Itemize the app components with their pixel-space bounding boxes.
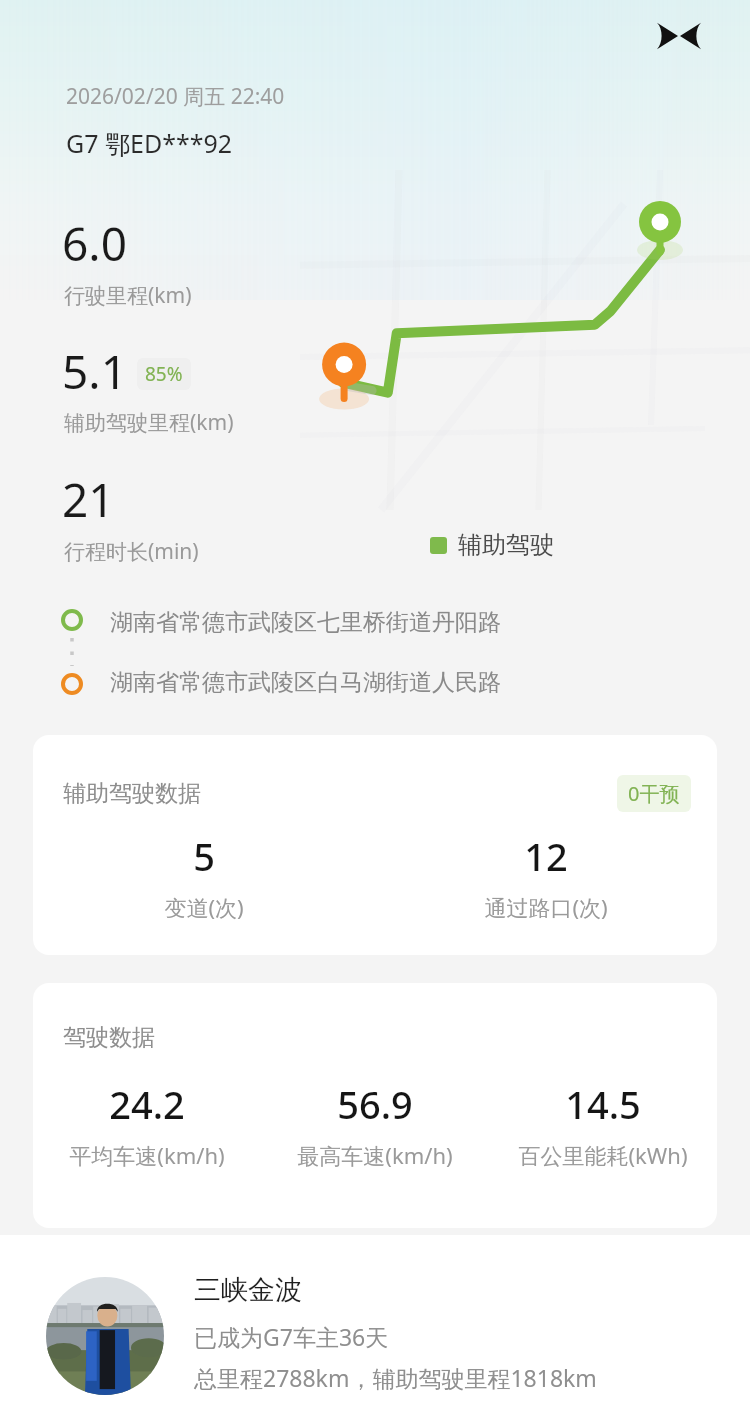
staticText: 已成为G7车主36天 xyxy=(194,1321,389,1352)
staticText: G7 鄂ED***92 xyxy=(66,126,233,160)
staticText: 2026/02/20 周五 22:40 xyxy=(66,82,285,111)
staticText: 变道(次) xyxy=(164,892,244,922)
staticText: 百公里能耗(kWh) xyxy=(518,1140,688,1170)
staticText: 24.2 xyxy=(109,1078,185,1130)
button[interactable]: Brand logo xyxy=(655,12,703,60)
staticText: 14.5 xyxy=(565,1078,641,1130)
staticText: 5 xyxy=(193,830,215,882)
staticText: 0干预 xyxy=(628,780,680,807)
staticText: 行驶里程(km) xyxy=(64,281,192,310)
staticText: 驾驶数据 xyxy=(63,1023,155,1052)
staticText: 21 xyxy=(62,468,115,531)
staticText: 平均车速(km/h) xyxy=(69,1140,225,1170)
staticText: 85% xyxy=(145,361,183,387)
staticText: 湖南省常德市武陵区白马湖街道人民路 xyxy=(110,668,501,697)
button[interactable]: 三峡金波 xyxy=(0,1235,750,1422)
staticText: 56.9 xyxy=(337,1078,413,1130)
staticText: 总里程2788km，辅助驾驶里程1818km xyxy=(194,1362,597,1393)
staticText: 最高车速(km/h) xyxy=(297,1140,453,1170)
button[interactable]: 驾驶数据 xyxy=(33,983,717,1228)
staticText: 通过路口(次) xyxy=(484,892,608,922)
staticText: 12 xyxy=(524,830,568,882)
staticText: 辅助驾驶 xyxy=(458,530,554,560)
staticText: 三峡金波 xyxy=(194,1273,302,1307)
button[interactable]: 辅助驾驶数据 xyxy=(33,735,717,955)
staticText: 行程时长(min) xyxy=(64,537,199,566)
staticText: 辅助驾驶里程(km) xyxy=(64,408,234,437)
staticText: 湖南省常德市武陵区七里桥街道丹阳路 xyxy=(110,608,501,637)
staticText: 6.0 xyxy=(62,212,127,275)
staticText: 5.1 xyxy=(62,340,127,403)
staticText: 辅助驾驶数据 xyxy=(63,779,201,808)
